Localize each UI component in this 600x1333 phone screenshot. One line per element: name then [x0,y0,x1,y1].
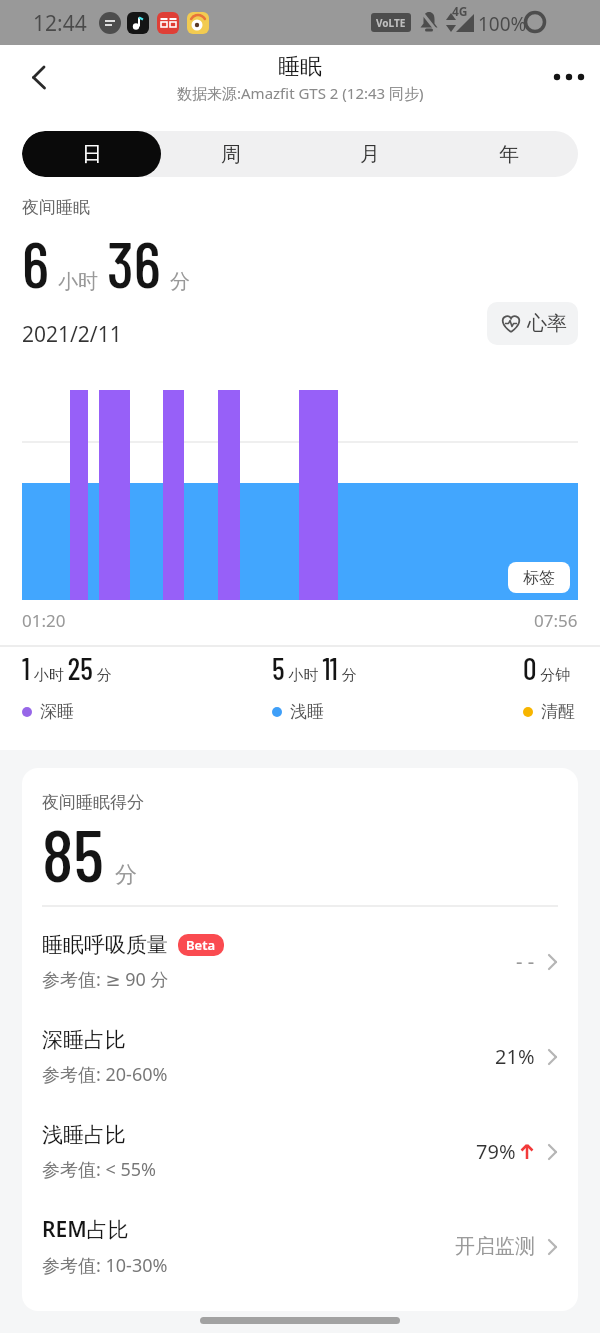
staticText: 6 [22,224,49,301]
staticText: 分 [115,861,137,889]
staticText: 清醒 [541,701,575,722]
staticText: 参考值: < 55% [42,1157,157,1182]
staticText: 参考值: 20-60% [42,1062,168,1087]
staticText: 分 [170,269,190,294]
staticText: 79% [476,1138,516,1165]
staticText: 夜间睡眠得分 [42,792,144,813]
staticText: 睡眠 [278,53,322,81]
staticText: REM占比 [42,1215,129,1244]
staticText: 07:56 [534,609,578,632]
staticText: 深睡占比 [42,1027,126,1053]
staticText: 85 [42,809,104,897]
staticText: Beta [186,936,216,954]
staticText: 5 小时 11 分 [272,650,357,686]
staticText: 01:20 [22,609,66,632]
staticText: 12:44 [33,9,87,38]
button[interactable]: 睡眠呼吸质量 [42,914,558,1009]
staticText: 2021/2/11 [22,320,122,349]
staticText: 深睡 [40,701,74,722]
button[interactable]: 日 [22,131,161,177]
button[interactable]: 年 [439,131,578,177]
staticText: 睡眠呼吸质量 [42,932,168,958]
staticText: 参考值: ≥ 90 分 [42,967,169,992]
button[interactable] [547,69,587,85]
button[interactable]: 浅睡占比 [42,1104,558,1199]
staticText: 年 [499,142,519,167]
staticText: VoLTE [376,16,406,30]
staticText: 100% [478,11,527,37]
staticText: 浅睡 [290,701,324,722]
button[interactable]: 标签 [508,562,570,593]
staticText: 夜间睡眠 [22,197,90,218]
staticText: 36 [107,224,161,301]
staticText: 21% [495,1043,535,1070]
staticText: 参考值: 10-30% [42,1253,168,1278]
staticText: 4G [452,3,468,19]
button[interactable]: 周 [161,131,300,177]
staticText: 日 [82,142,102,167]
button[interactable]: REM占比 [42,1199,558,1294]
button[interactable]: 深睡占比 [42,1009,558,1104]
staticText: 周 [221,142,241,167]
staticText: 小时 [58,269,98,294]
staticText: 浅睡占比 [42,1122,126,1148]
button[interactable] [22,57,56,95]
staticText: 心率 [527,311,567,336]
staticText: 数据来源:Amazfit GTS 2 (12:43 同步) [177,83,424,103]
button[interactable]: 心率 [487,302,578,345]
staticText: 标签 [523,568,555,588]
staticText: 月 [360,142,380,167]
staticText: 1 小时 25 分 [22,650,112,686]
staticText: 开启监测 [455,1234,535,1259]
button[interactable]: 月 [300,131,439,177]
staticText: - - [516,948,535,975]
staticText: 0 分钟 [523,650,575,686]
